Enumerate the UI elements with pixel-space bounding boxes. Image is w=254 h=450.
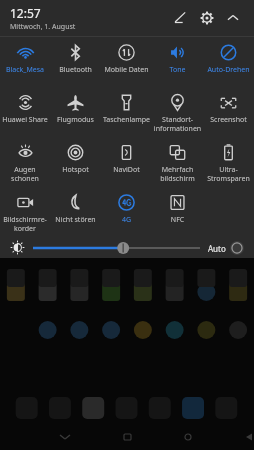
button[interactable]: Mehrfach bildschirm bbox=[152, 137, 203, 187]
staticText: NFC bbox=[153, 215, 202, 225]
button[interactable]: Mobile Daten bbox=[101, 37, 152, 87]
staticText: Nicht stören bbox=[51, 215, 100, 225]
button[interactable]: Bluetooth bbox=[50, 37, 101, 87]
staticText: Mittwoch, 1. August bbox=[10, 22, 76, 32]
staticText: Ultra-Stromsparen bbox=[204, 165, 253, 183]
button[interactable]: Einklappen bbox=[220, 5, 246, 31]
staticText: Standort-informationen bbox=[153, 115, 202, 133]
button[interactable]: Flugmodus bbox=[50, 87, 101, 137]
button[interactable]: Nicht stören bbox=[50, 187, 101, 237]
button[interactable]: Hotspot bbox=[50, 137, 101, 187]
staticText: Hotspot bbox=[51, 165, 100, 175]
button[interactable]: 4G bbox=[101, 187, 152, 237]
button[interactable]: Huawei Share bbox=[0, 87, 50, 137]
button[interactable]: Augen schonen bbox=[0, 137, 50, 187]
staticText: 12:57 bbox=[10, 5, 41, 21]
staticText: Huawei Share bbox=[1, 115, 49, 125]
button[interactable]: Ultra-Stromsparen bbox=[203, 137, 254, 187]
button[interactable]: Auto bbox=[208, 241, 244, 255]
staticText: Mehrfach bildschirm bbox=[153, 165, 202, 183]
staticText: Auto-Drehen bbox=[204, 65, 253, 75]
staticText: Bluetooth bbox=[51, 65, 100, 75]
button[interactable]: NFC bbox=[152, 187, 203, 237]
staticText: Flugmodus bbox=[51, 115, 100, 125]
button[interactable]: Bearbeiten bbox=[168, 5, 194, 31]
staticText: Black_Mesa bbox=[1, 65, 49, 75]
button[interactable]: Standort-informationen bbox=[152, 87, 203, 137]
staticText: NaviDot bbox=[102, 165, 151, 175]
staticText: Auto bbox=[208, 243, 226, 254]
staticText: Mobile Daten bbox=[102, 65, 151, 75]
staticText: 4G bbox=[102, 215, 151, 225]
button[interactable]: Black_Mesa bbox=[0, 37, 50, 87]
button[interactable]: NaviDot bbox=[101, 137, 152, 187]
button[interactable]: Taschenlampe bbox=[101, 87, 152, 137]
button[interactable]: Einstellungen bbox=[194, 5, 220, 31]
button[interactable]: Tone bbox=[152, 37, 203, 87]
staticText: Augen schonen bbox=[1, 165, 49, 183]
button[interactable]: Bildschirmre-korder bbox=[0, 187, 50, 237]
button[interactable] bbox=[33, 240, 200, 256]
staticText: Screenshot bbox=[204, 115, 253, 125]
staticText: Taschenlampe bbox=[102, 115, 151, 125]
staticText: Tone bbox=[153, 65, 202, 75]
button[interactable]: Screenshot bbox=[203, 87, 254, 137]
staticText: Bildschirmre-korder bbox=[1, 215, 49, 233]
button[interactable]: Auto-Drehen bbox=[203, 37, 254, 87]
